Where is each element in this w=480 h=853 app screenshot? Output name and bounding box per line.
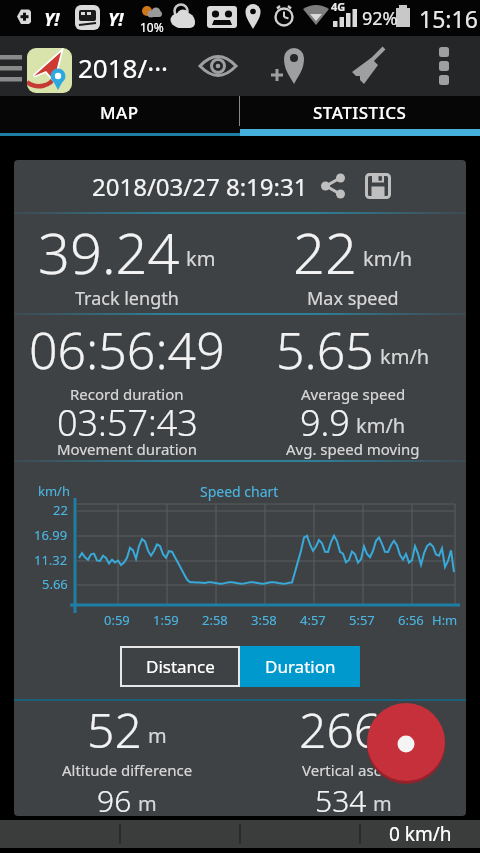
staticText: Max speed <box>307 286 399 311</box>
staticText: Movement duration <box>57 439 197 459</box>
staticText: 5.66 <box>42 575 68 593</box>
staticText: km <box>186 245 216 272</box>
staticText: km/h <box>356 412 406 439</box>
staticText: Average speed <box>301 384 406 404</box>
button[interactable] <box>320 173 352 203</box>
staticText: 1:59 <box>153 611 179 629</box>
staticText: 5:57 <box>349 611 375 629</box>
staticText: Avg. speed moving <box>286 439 420 459</box>
button[interactable] <box>192 52 244 92</box>
button[interactable] <box>365 173 397 203</box>
button[interactable] <box>344 44 392 92</box>
button[interactable] <box>266 44 312 92</box>
staticText: m <box>138 790 157 816</box>
staticText: STATISTICS <box>313 101 407 124</box>
staticText: 22 <box>53 501 68 519</box>
staticText: Track length <box>75 286 179 311</box>
staticText: Vertical ascent <box>302 760 404 780</box>
staticText: 03:57:43 <box>57 398 198 447</box>
button[interactable] <box>27 48 72 93</box>
staticText: km/h <box>363 245 413 272</box>
staticText: 2018/03/27 8:19:31 <box>92 170 308 203</box>
button[interactable] <box>366 702 446 782</box>
staticText: Y! <box>44 7 60 32</box>
staticText: Speed chart <box>200 482 279 501</box>
staticText: 15:16 <box>419 3 478 34</box>
staticText: Y! <box>108 7 124 32</box>
staticText: 10% <box>140 19 164 35</box>
button[interactable]: MAP <box>0 96 239 129</box>
staticText: 534 <box>315 780 367 816</box>
staticText: Record duration <box>70 384 184 404</box>
staticText: 266 <box>299 697 382 762</box>
staticText: Duration <box>265 655 336 678</box>
staticText: 9.9 <box>300 398 350 447</box>
staticText: 16.99 <box>34 526 68 544</box>
staticText: Altitude difference <box>62 760 193 780</box>
staticText: 92% <box>362 6 398 31</box>
staticText: 3:58 <box>251 611 277 629</box>
staticText: 4G <box>331 0 346 14</box>
staticText: Distance <box>146 655 215 678</box>
staticText: 0 km/h <box>389 821 452 847</box>
button[interactable]: Duration <box>240 646 360 687</box>
staticText: m <box>373 790 392 816</box>
staticText: 0:59 <box>104 611 130 629</box>
staticText: km/h <box>38 482 70 500</box>
staticText: 5.65 <box>276 316 374 384</box>
staticText: H:m <box>432 611 458 629</box>
staticText: 39.24 <box>38 214 180 286</box>
staticText: 52 <box>87 697 142 762</box>
staticText: MAP <box>100 101 139 124</box>
staticText: 11.32 <box>34 551 68 569</box>
staticText: 2018/··· <box>78 50 169 85</box>
staticText: 2:58 <box>202 611 228 629</box>
staticText: m <box>388 722 407 749</box>
staticText: 6:56 <box>398 611 424 629</box>
staticText: 4:57 <box>300 611 326 629</box>
staticText: m <box>148 722 167 749</box>
staticText: km/h <box>380 343 430 370</box>
button[interactable]: STATISTICS <box>240 96 480 129</box>
button[interactable] <box>426 42 462 90</box>
staticText: 06:56:49 <box>29 316 225 384</box>
staticText: 96 <box>97 780 132 816</box>
button[interactable]: Distance <box>120 646 240 687</box>
staticText: 22 <box>293 214 357 286</box>
